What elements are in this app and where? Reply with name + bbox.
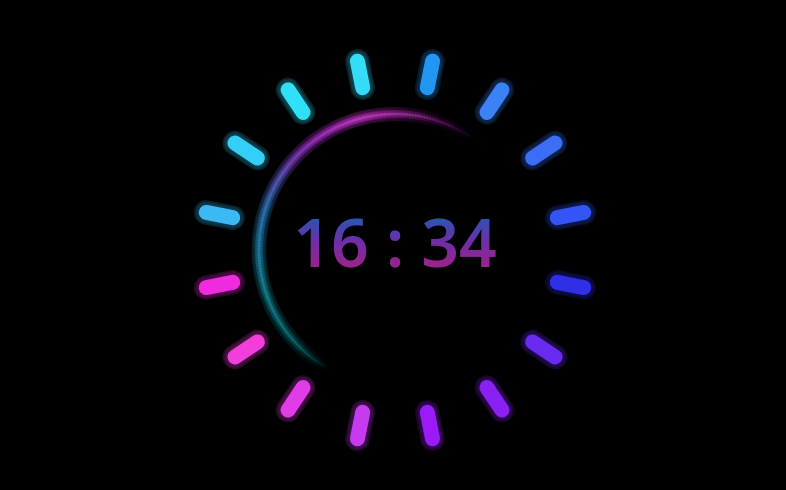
staticText: 16 : 34 (293, 196, 497, 286)
button[interactable]: 16 : 34 (293, 196, 497, 286)
button[interactable]: Neon sunburst watch face showing 16:34 (0, 0, 786, 490)
